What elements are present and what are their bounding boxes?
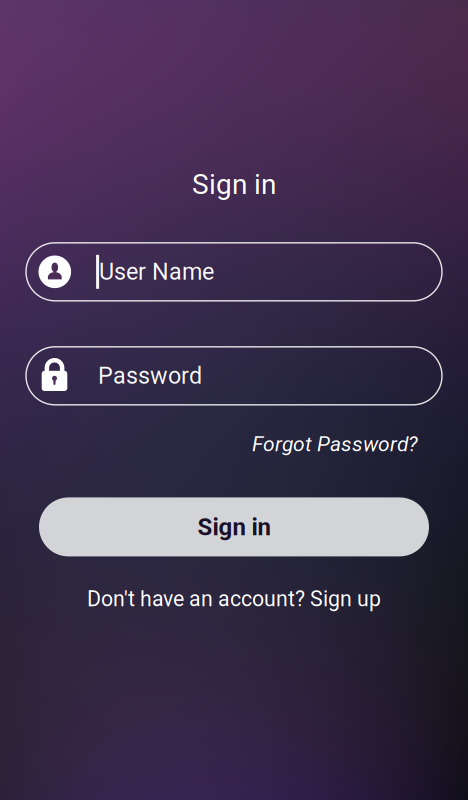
staticText: Sign in: [192, 168, 276, 201]
staticText: User Name: [99, 258, 214, 285]
staticText: Sign in: [197, 513, 270, 541]
button[interactable]: User Name: [26, 243, 442, 301]
button[interactable]: Password: [26, 347, 442, 405]
button[interactable]: Sign in: [39, 497, 429, 556]
button[interactable]: Don't have an account? Sign up: [87, 586, 381, 611]
staticText: Forgot Password?: [252, 432, 418, 456]
staticText: Don't have an account? Sign up: [87, 586, 381, 611]
staticText: Password: [98, 362, 202, 389]
button[interactable]: Forgot Password?: [252, 432, 418, 456]
